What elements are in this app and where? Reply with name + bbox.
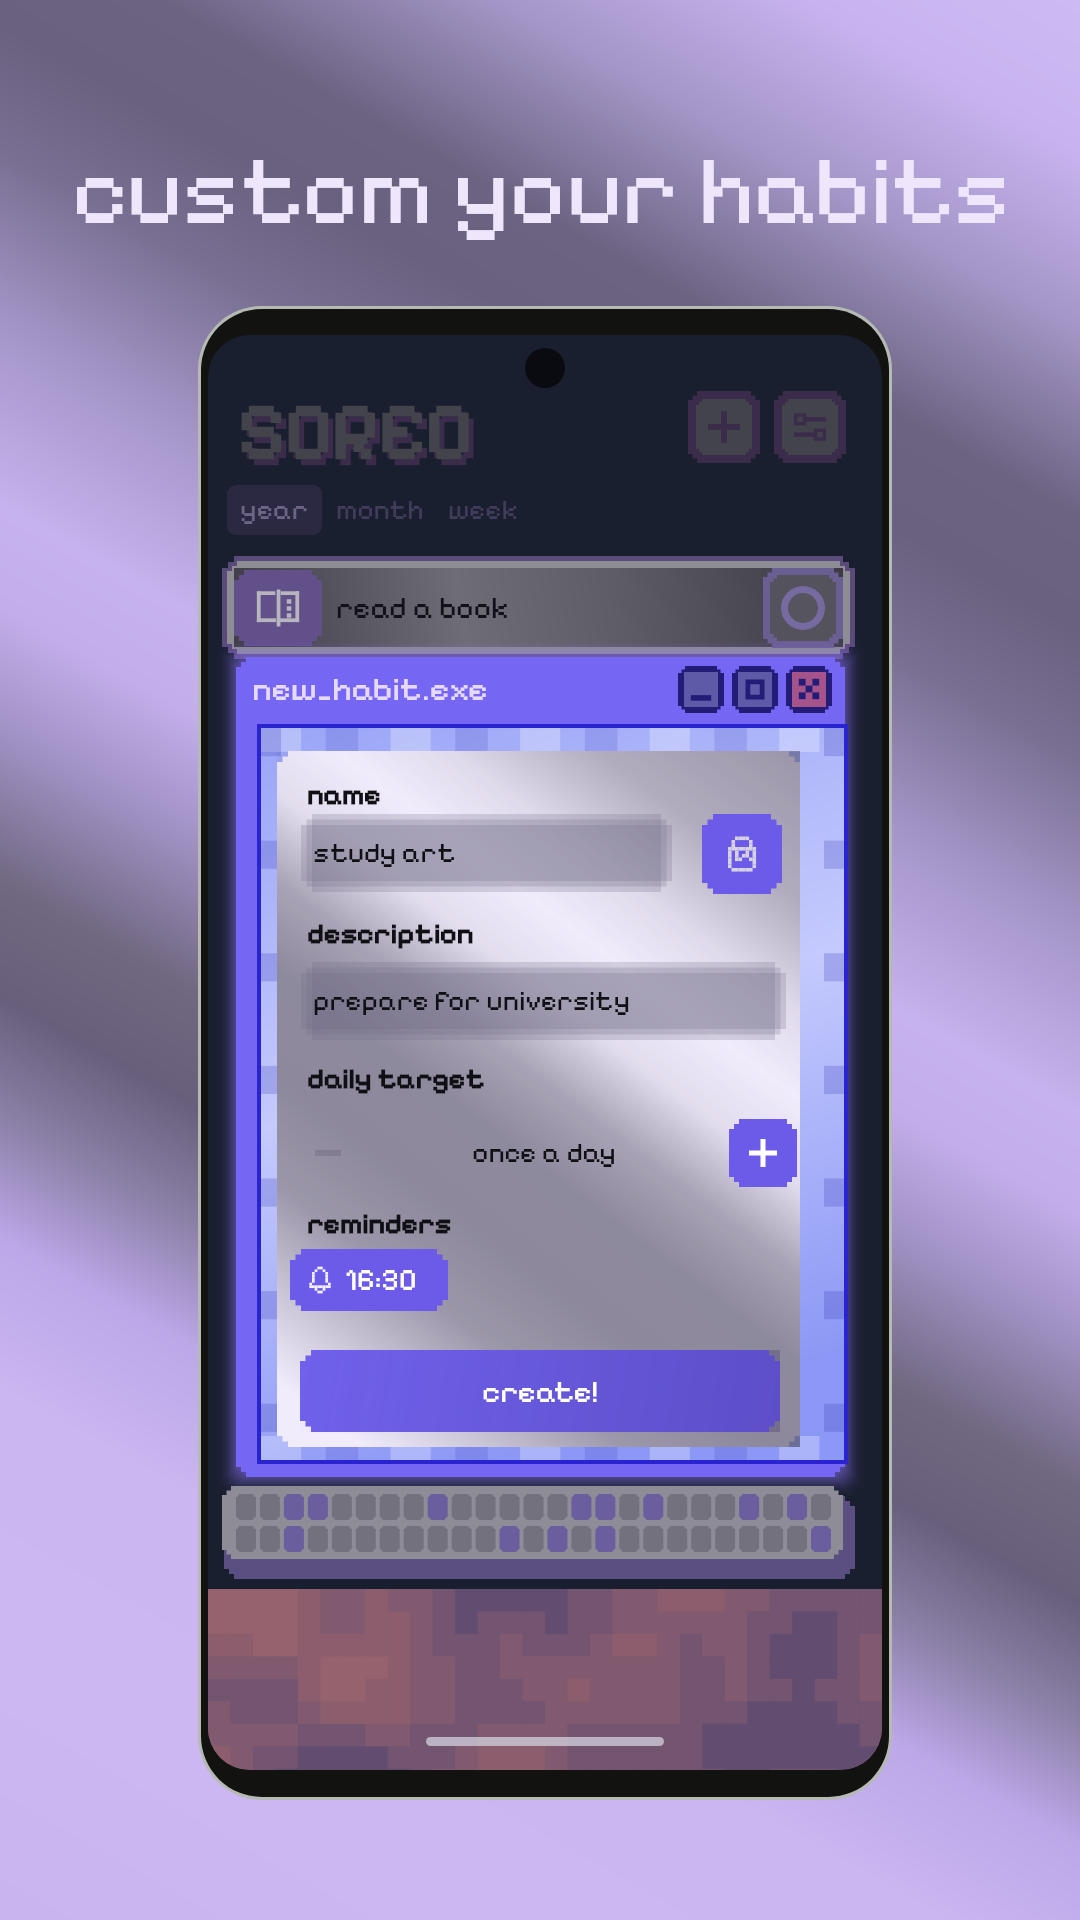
button[interactable]: create! (300, 1350, 780, 1432)
button[interactable]: Close (786, 666, 832, 713)
staticText: reminders (307, 1206, 452, 1241)
staticText: daily target (307, 1061, 485, 1096)
staticText: custom your habits (71, 133, 1010, 249)
staticText: prepare for university (313, 984, 630, 1018)
button[interactable]: year (227, 485, 322, 535)
button[interactable]: Add habit (688, 391, 760, 463)
staticText: month (336, 493, 424, 527)
staticText: week (448, 493, 518, 527)
staticText: study art (313, 836, 456, 870)
button[interactable]: Increase target (729, 1119, 797, 1187)
button[interactable]: Choose icon (702, 814, 782, 894)
staticText: description (307, 916, 474, 951)
button[interactable]: Settings (774, 391, 846, 463)
staticText: create! (482, 1373, 599, 1410)
button[interactable]: month (322, 485, 438, 535)
button[interactable]: read a book (222, 556, 855, 659)
staticText: SOREO (243, 389, 478, 485)
button[interactable]: Maximize (732, 666, 778, 713)
staticText: 16:30 (345, 1262, 417, 1298)
button[interactable]: Reminder 16:30 (290, 1249, 448, 1311)
button[interactable]: Minimize (678, 666, 724, 713)
staticText: new_habit.exe (252, 669, 488, 710)
staticText: name (307, 777, 381, 812)
staticText: once a day (472, 1136, 616, 1170)
button[interactable]: week (438, 485, 528, 535)
staticText: read a book (336, 590, 509, 626)
button[interactable]: Decrease target (302, 1127, 354, 1179)
staticText: SOREO (238, 383, 473, 479)
staticText: year (240, 493, 309, 527)
